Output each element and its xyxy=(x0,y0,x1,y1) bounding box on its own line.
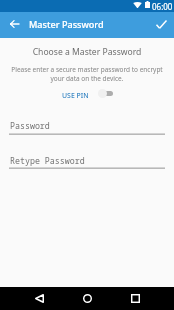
staticText: Retype Password xyxy=(10,155,85,166)
button[interactable]: Recent apps xyxy=(125,288,145,308)
staticText: Password xyxy=(10,120,50,131)
button[interactable]: Home xyxy=(77,288,97,308)
button[interactable]: Back xyxy=(29,288,49,308)
staticText: 06:00 xyxy=(152,1,173,12)
staticText: USE PIN xyxy=(62,91,89,100)
staticText: Master Password xyxy=(29,18,104,30)
button[interactable]: Navigate up xyxy=(2,12,26,36)
staticText: Choose a Master Password xyxy=(0,46,174,58)
button[interactable]: USE PIN xyxy=(58,86,116,102)
button[interactable]: Confirm xyxy=(149,12,173,36)
staticText: Please enter a secure master password to… xyxy=(0,65,174,83)
